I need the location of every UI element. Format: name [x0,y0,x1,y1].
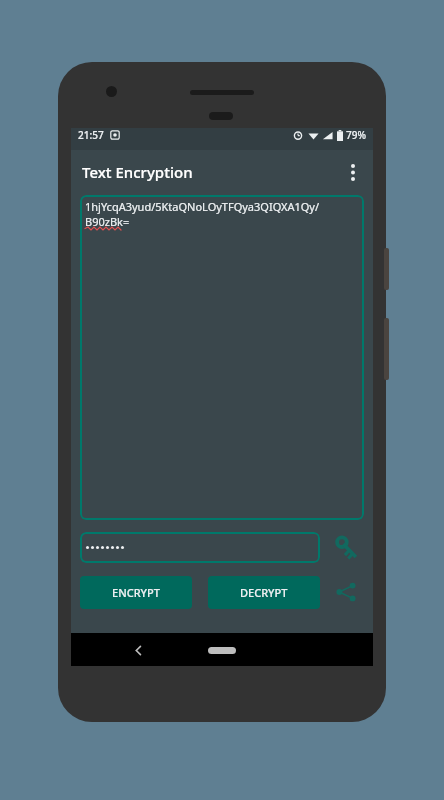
staticText: B90zBk= [85,214,130,229]
button[interactable] [80,532,320,563]
staticText: ENCRYPT [112,585,160,600]
button[interactable]: More options [333,152,373,192]
button[interactable]: DECRYPT [208,576,320,609]
staticText: 21:57 [78,128,104,142]
button[interactable]: Generate key [328,529,364,565]
staticText: Text Encryption [82,162,193,182]
staticText: 79% [346,128,366,142]
staticText: DECRYPT [240,585,288,600]
button[interactable]: Home [202,642,242,658]
button[interactable]: Back [123,635,153,665]
button[interactable]: ENCRYPT [80,576,192,609]
button[interactable]: Share [328,574,364,610]
button[interactable]: 1hjYcqA3yud/5KtaQNoLOyTFQya3QIQXA1Qy/ [80,195,364,520]
staticText: 1hjYcqA3yud/5KtaQNoLOyTFQya3QIQXA1Qy/ [85,199,320,214]
